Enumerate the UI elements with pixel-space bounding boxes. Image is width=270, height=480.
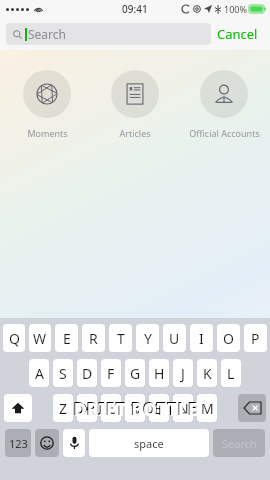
staticText: Search xyxy=(28,26,66,42)
staticText: DRIFT BOTTLE xyxy=(73,397,198,420)
button[interactable]: G xyxy=(125,359,145,387)
staticText: P xyxy=(251,329,260,348)
staticText: Moments xyxy=(27,127,68,139)
button[interactable]: F xyxy=(101,359,121,387)
button[interactable]: P xyxy=(244,324,267,352)
button[interactable]: Q xyxy=(3,324,25,352)
staticText: Search xyxy=(222,436,257,451)
staticText: M xyxy=(201,399,214,418)
button[interactable]: O xyxy=(217,324,240,352)
button[interactable]: space xyxy=(89,429,209,457)
button[interactable]: I xyxy=(190,324,213,352)
staticText: Y xyxy=(144,329,152,348)
button[interactable]: C xyxy=(101,394,121,422)
staticText: 09:41 xyxy=(122,2,148,16)
staticText: D xyxy=(82,364,93,383)
staticText: C xyxy=(107,399,116,418)
button[interactable]: Cancel xyxy=(211,21,264,47)
staticText: Cancel xyxy=(217,25,258,43)
staticText: O xyxy=(223,329,234,348)
staticText: 123 xyxy=(9,436,28,451)
staticText: J xyxy=(181,364,185,383)
staticText: G xyxy=(130,364,141,383)
button[interactable]: Z xyxy=(53,394,73,422)
button[interactable]: R xyxy=(82,324,105,352)
button[interactable]: Moments xyxy=(5,68,89,141)
staticText: R xyxy=(89,329,98,348)
button[interactable]: Backspace xyxy=(238,394,266,422)
button[interactable]: Shift xyxy=(4,394,32,422)
button[interactable]: 123 xyxy=(5,429,31,457)
button[interactable]: H xyxy=(149,359,169,387)
staticText: Q xyxy=(9,329,20,348)
button[interactable]: Articles xyxy=(93,68,177,141)
staticText: F xyxy=(107,364,115,383)
staticText: E xyxy=(63,329,71,348)
button[interactable]: A xyxy=(29,359,49,387)
staticText: N xyxy=(178,399,189,418)
button[interactable]: J xyxy=(173,359,193,387)
staticText: space xyxy=(134,436,164,451)
button[interactable]: Search xyxy=(6,23,211,45)
staticText: L xyxy=(227,364,235,383)
staticText: S xyxy=(59,364,67,383)
staticText: V xyxy=(131,399,140,418)
button[interactable]: V xyxy=(125,394,145,422)
button[interactable]: K xyxy=(197,359,217,387)
staticText: B xyxy=(154,399,164,418)
staticText: 100% xyxy=(224,3,247,15)
staticText: K xyxy=(203,364,212,383)
button[interactable]: Search xyxy=(213,429,265,457)
button[interactable]: W xyxy=(29,324,51,352)
staticText: U xyxy=(169,329,180,348)
button[interactable]: Dictate xyxy=(63,429,85,457)
button[interactable]: Y xyxy=(136,324,159,352)
button[interactable]: M xyxy=(197,394,217,422)
button[interactable]: S xyxy=(53,359,73,387)
button[interactable]: E xyxy=(55,324,78,352)
staticText: A xyxy=(35,364,44,383)
button[interactable]: T xyxy=(109,324,132,352)
staticText: W xyxy=(33,329,47,348)
button[interactable]: U xyxy=(163,324,186,352)
staticText: DRIFT BOTTLE xyxy=(74,398,199,421)
staticText: T xyxy=(117,329,125,348)
button[interactable]: X xyxy=(77,394,97,422)
staticText: H xyxy=(154,364,165,383)
button[interactable]: Official Accounts xyxy=(182,68,266,141)
button[interactable]: B xyxy=(149,394,169,422)
staticText: Official Accounts xyxy=(189,127,260,139)
staticText: X xyxy=(83,399,92,418)
staticText: Z xyxy=(59,399,68,418)
button[interactable]: N xyxy=(173,394,193,422)
staticText: Articles xyxy=(119,127,151,139)
button[interactable]: D xyxy=(77,359,97,387)
button[interactable]: L xyxy=(221,359,241,387)
staticText: I xyxy=(199,329,204,348)
button[interactable]: Emoji xyxy=(35,429,59,457)
